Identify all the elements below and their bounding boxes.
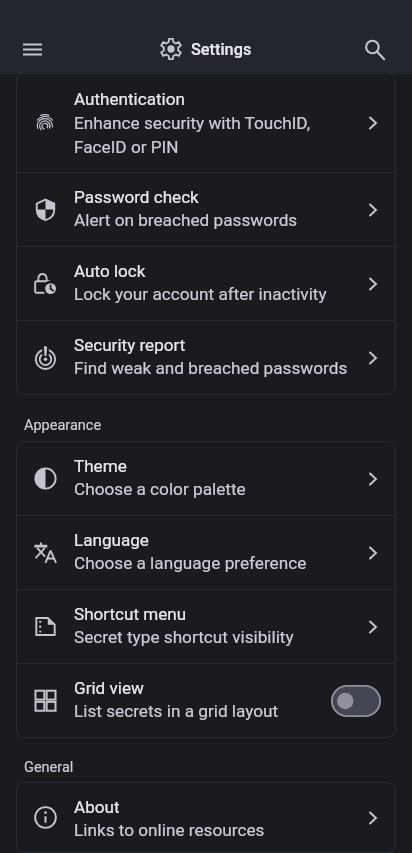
button[interactable]: Authentication (17, 74, 395, 172)
staticText: Lock your account after inactivity (74, 284, 327, 304)
button[interactable]: About (17, 783, 395, 852)
button[interactable]: Password check (17, 173, 395, 246)
staticText: List secrets in a grid layout (74, 701, 279, 721)
staticText: Theme (74, 456, 127, 476)
staticText: Auto lock (74, 261, 146, 281)
button[interactable]: Search (352, 27, 396, 71)
staticText: Links to online resources (74, 820, 265, 840)
staticText: Alert on breached passwords (74, 210, 298, 230)
staticText: Shortcut menu (74, 604, 187, 624)
staticText: Authentication (74, 89, 185, 109)
button[interactable]: Shortcut menu (17, 590, 395, 663)
staticText: Find weak and breached passwords (74, 358, 348, 378)
button[interactable]: Auto lock (17, 247, 395, 320)
button[interactable]: Grid view (17, 664, 395, 737)
staticText: General (24, 759, 74, 776)
button[interactable]: Security report (17, 321, 395, 394)
button[interactable]: Open navigation menu (10, 27, 54, 71)
staticText: Choose a language preference (74, 553, 307, 573)
staticText: Language (74, 530, 149, 550)
staticText: Appearance (24, 417, 102, 434)
staticText: Security report (74, 335, 186, 355)
staticText: Choose a color palette (74, 479, 246, 499)
button[interactable]: Language (17, 516, 395, 589)
staticText: Settings (191, 40, 252, 59)
staticText: Enhance security with TouchID, FaceID or… (74, 113, 311, 157)
staticText: Password check (74, 187, 199, 207)
staticText: About (74, 797, 120, 817)
staticText: Grid view (74, 678, 144, 698)
staticText: Secret type shortcut visibility (74, 627, 294, 647)
button[interactable]: Theme (17, 442, 395, 515)
